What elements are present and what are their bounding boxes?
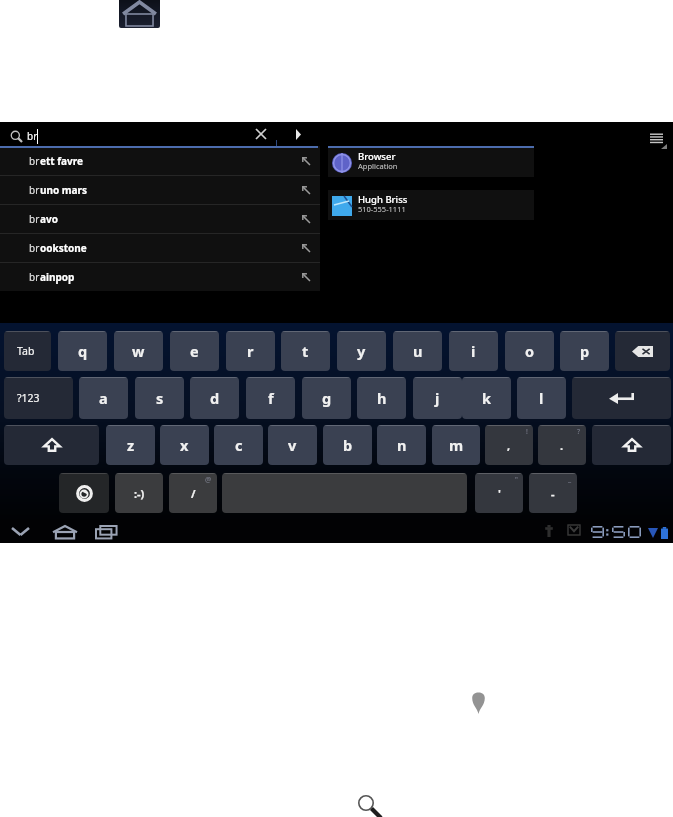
button[interactable]: ? <box>538 425 586 465</box>
button[interactable]: v <box>268 425 317 465</box>
staticText: Browser <box>358 150 396 163</box>
staticText: " <box>515 475 518 485</box>
staticText: p <box>580 341 590 361</box>
staticText: a <box>99 388 108 408</box>
staticText: - <box>551 486 555 501</box>
staticText: br <box>27 129 38 143</box>
button[interactable]: a <box>79 377 128 419</box>
staticText: ' <box>498 486 501 501</box>
staticText: b <box>343 435 353 455</box>
staticText: c <box>235 435 243 455</box>
staticText: / <box>191 486 196 501</box>
button[interactable]: h <box>357 377 406 419</box>
button[interactable]: Home <box>119 0 160 28</box>
staticText: y <box>357 341 366 361</box>
button[interactable]: Voice search <box>286 122 310 146</box>
button[interactable]: Home <box>50 521 79 542</box>
staticText: Application <box>358 161 398 171</box>
button[interactable]: d <box>190 377 239 419</box>
staticText: br <box>29 241 40 255</box>
staticText: z <box>127 435 135 455</box>
staticText: g <box>322 388 332 408</box>
staticText: ?123 <box>17 391 40 405</box>
staticText: _ <box>568 475 572 485</box>
staticText: l <box>539 388 544 408</box>
button[interactable]: Tab <box>4 331 51 371</box>
button[interactable]: br <box>0 175 320 204</box>
staticText: br <box>29 212 40 226</box>
button[interactable]: o <box>505 331 554 371</box>
staticText: h <box>377 388 387 408</box>
staticText: i <box>471 341 476 361</box>
staticText: v <box>288 435 297 455</box>
staticText: uno mars <box>40 183 88 197</box>
staticText: avo <box>40 212 58 226</box>
button[interactable]: u <box>393 331 442 371</box>
button[interactable]: j <box>413 377 462 419</box>
staticText: ! <box>526 427 528 437</box>
staticText: :-) <box>134 486 145 501</box>
staticText: ? <box>577 427 581 437</box>
staticText: @ <box>205 475 212 485</box>
staticText: d <box>210 388 220 408</box>
button[interactable]: :-) <box>115 473 163 513</box>
button[interactable]: f <box>246 377 295 419</box>
staticText: , <box>507 438 511 453</box>
button[interactable]: l <box>517 377 566 419</box>
button[interactable]: p <box>560 331 609 371</box>
button[interactable] <box>615 331 670 371</box>
button[interactable]: Hugh Briss <box>328 190 534 220</box>
button[interactable]: k <box>462 377 511 419</box>
button[interactable]: ! <box>485 425 533 465</box>
button[interactable]: b <box>323 425 372 465</box>
button[interactable]: br <box>0 262 320 291</box>
staticText: u <box>413 341 423 361</box>
staticText: q <box>78 341 88 361</box>
button[interactable]: ?123 <box>4 377 73 419</box>
staticText: e <box>190 341 199 361</box>
staticText: f <box>268 388 274 408</box>
button[interactable]: z <box>106 425 155 465</box>
button[interactable] <box>4 425 99 465</box>
button[interactable]: x <box>160 425 209 465</box>
button[interactable]: t <box>281 331 330 371</box>
button[interactable]: br <box>0 204 320 233</box>
button[interactable]: n <box>377 425 426 465</box>
button[interactable]: s <box>135 377 184 419</box>
button[interactable]: r <box>226 331 275 371</box>
staticText: r <box>247 341 254 361</box>
button[interactable] <box>572 377 671 419</box>
button[interactable] <box>592 425 671 465</box>
button[interactable]: m <box>432 425 480 465</box>
button[interactable]: g <box>302 377 351 419</box>
staticText: br <box>29 183 40 197</box>
button[interactable]: Recent apps <box>92 521 119 542</box>
button[interactable]: c <box>214 425 263 465</box>
button[interactable]: i <box>449 331 498 371</box>
button[interactable]: q <box>58 331 107 371</box>
button[interactable]: w <box>114 331 163 371</box>
staticText: Tab <box>17 344 35 358</box>
staticText: ainpop <box>40 270 75 284</box>
staticText: s <box>156 388 164 408</box>
staticText: m <box>449 435 464 455</box>
button[interactable]: Back <box>7 521 34 542</box>
staticText: o <box>525 341 535 361</box>
button[interactable] <box>59 473 109 513</box>
button[interactable]: e <box>170 331 219 371</box>
button[interactable]: br <box>0 233 320 262</box>
button[interactable]: Clear query <box>248 122 274 146</box>
button[interactable] <box>222 473 467 513</box>
staticText: k <box>482 388 491 408</box>
button[interactable]: " <box>475 473 523 513</box>
staticText: Hugh Briss <box>358 193 408 206</box>
button[interactable]: y <box>337 331 386 371</box>
staticText: j <box>435 388 440 408</box>
button[interactable]: Browser <box>328 147 534 177</box>
staticText: n <box>397 435 407 455</box>
button[interactable]: br <box>0 146 320 175</box>
staticText: t <box>302 341 309 361</box>
button[interactable]: Menu <box>642 126 672 152</box>
button[interactable]: @ <box>169 473 217 513</box>
button[interactable]: _ <box>529 473 577 513</box>
